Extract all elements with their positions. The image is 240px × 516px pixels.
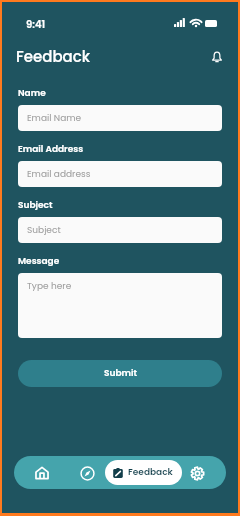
button[interactable]: Type here: [18, 273, 222, 338]
staticText: 9:41: [26, 17, 46, 31]
staticText: Subject: [18, 199, 53, 212]
staticText: Type here: [27, 280, 72, 293]
button[interactable]: Settings: [186, 462, 208, 484]
button[interactable]: Email address: [18, 161, 222, 187]
staticText: Subject: [27, 224, 61, 237]
button[interactable]: Notifications: [205, 45, 229, 69]
staticText: Name: [18, 87, 46, 100]
staticText: Feedback: [16, 46, 91, 67]
staticText: Feedback: [128, 466, 173, 479]
button[interactable]: Submit: [18, 360, 222, 387]
button[interactable]: Subject: [18, 217, 222, 243]
staticText: Email address: [27, 168, 91, 181]
staticText: Email Name: [27, 112, 82, 125]
button[interactable]: Email Name: [18, 105, 222, 131]
staticText: Email Address: [18, 143, 84, 156]
button[interactable]: Home: [31, 462, 53, 484]
staticText: Message: [18, 255, 60, 268]
button[interactable]: Feedback: [105, 460, 182, 485]
staticText: Submit: [104, 367, 137, 380]
button[interactable]: Explore: [76, 462, 98, 484]
